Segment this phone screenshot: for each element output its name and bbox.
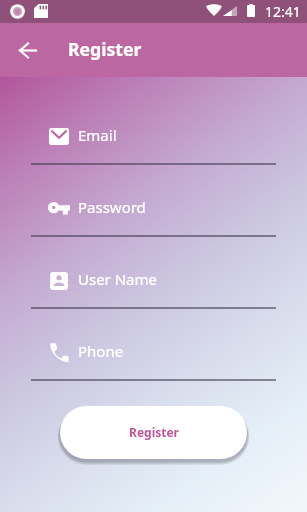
button[interactable]: Password [31,197,276,237]
button[interactable]: Phone [31,341,276,381]
staticText: User Name [78,269,158,289]
staticText: Register [68,37,142,61]
button[interactable]: Register [60,406,247,459]
staticText: 12:41 [265,2,301,21]
staticText: Password [78,197,146,217]
staticText: Phone [78,341,124,361]
button[interactable]: Email [31,125,276,165]
staticText: Register [129,424,179,440]
button[interactable]: User Name [31,269,276,309]
staticText: Email [78,125,117,145]
button[interactable]: Back [11,34,43,66]
